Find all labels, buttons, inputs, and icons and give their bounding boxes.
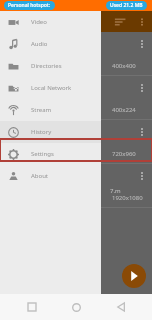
staticText: 1920x1080 [112, 194, 143, 202]
button[interactable]: Item menu [136, 170, 148, 182]
button[interactable]: Item menu [136, 82, 148, 94]
button[interactable]: Settings [0, 143, 101, 165]
button[interactable]: Item menu [136, 126, 148, 138]
button[interactable]: History [0, 121, 101, 143]
staticText: Stream [31, 106, 52, 114]
staticText: 720x960 [112, 150, 136, 158]
staticText: History [31, 128, 52, 136]
button[interactable]: Directories [0, 55, 101, 77]
staticText: Directories [31, 62, 62, 70]
button[interactable]: Play [122, 264, 146, 288]
button[interactable]: Stream [0, 99, 101, 121]
button[interactable]: Back [108, 294, 134, 320]
button[interactable]: Home [63, 294, 89, 320]
staticText: Used 21.2 MB [110, 2, 143, 9]
staticText: Local Network [31, 84, 72, 92]
button[interactable]: 720x960 [0, 120, 152, 164]
button[interactable]: 400x224 [0, 76, 152, 120]
staticText: Audio [31, 40, 48, 48]
button[interactable]: 7.m [0, 164, 152, 208]
staticText: Video [31, 18, 47, 26]
staticText: 7.m [110, 187, 121, 195]
button[interactable]: More options [135, 15, 149, 29]
staticText: 400x224 [112, 106, 136, 114]
button[interactable]: 400x400 [0, 32, 152, 76]
staticText: About [31, 172, 49, 180]
staticText: Settings [31, 150, 54, 158]
staticText: Personal hotspot: [8, 2, 51, 9]
staticText: 400x400 [112, 62, 136, 70]
button[interactable]: Item menu [136, 38, 148, 50]
button[interactable]: Local Network [0, 77, 101, 99]
button[interactable]: Recents [19, 294, 45, 320]
button[interactable]: About [0, 165, 101, 187]
button[interactable]: Audio [0, 33, 101, 55]
button[interactable]: Sort [112, 14, 128, 30]
button[interactable]: Video [0, 11, 101, 33]
